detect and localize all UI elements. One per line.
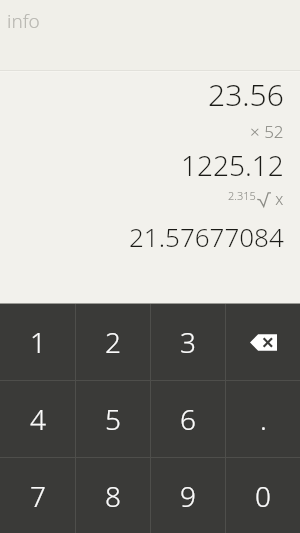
staticText: 9 (180, 477, 196, 515)
button[interactable]: 5 (76, 381, 150, 457)
button[interactable]: 9 (151, 458, 225, 533)
button[interactable]: Backspace (226, 304, 300, 380)
staticText: 1 (30, 323, 46, 361)
button[interactable]: 4 (0, 381, 75, 457)
button[interactable]: 1 (0, 304, 75, 380)
button[interactable]: 2 (76, 304, 150, 380)
staticText: 7 (30, 477, 46, 515)
button[interactable]: 8 (76, 458, 150, 533)
staticText: 2 (105, 323, 121, 361)
staticText: . (260, 400, 267, 438)
staticText: × 52 (250, 120, 284, 143)
staticText: x (271, 188, 284, 210)
button[interactable]: . (226, 381, 300, 457)
button[interactable]: 3 (151, 304, 225, 380)
staticText: 8 (105, 477, 121, 515)
staticText: 23.56 (208, 74, 284, 115)
staticText: 6 (180, 400, 196, 438)
staticText: 21.57677084 (129, 219, 284, 254)
staticText: 5 (105, 400, 121, 438)
button[interactable]: 6 (151, 381, 225, 457)
staticText: info (7, 8, 40, 34)
staticText: 1225.12 (181, 146, 284, 184)
button[interactable]: 7 (0, 458, 75, 533)
button[interactable]: 0 (226, 458, 300, 533)
button[interactable]: info (0, 0, 300, 70)
staticText: 3 (180, 323, 196, 361)
staticText: 4 (30, 400, 46, 438)
staticText: 2.315 (228, 188, 256, 203)
staticText: 0 (255, 477, 271, 515)
